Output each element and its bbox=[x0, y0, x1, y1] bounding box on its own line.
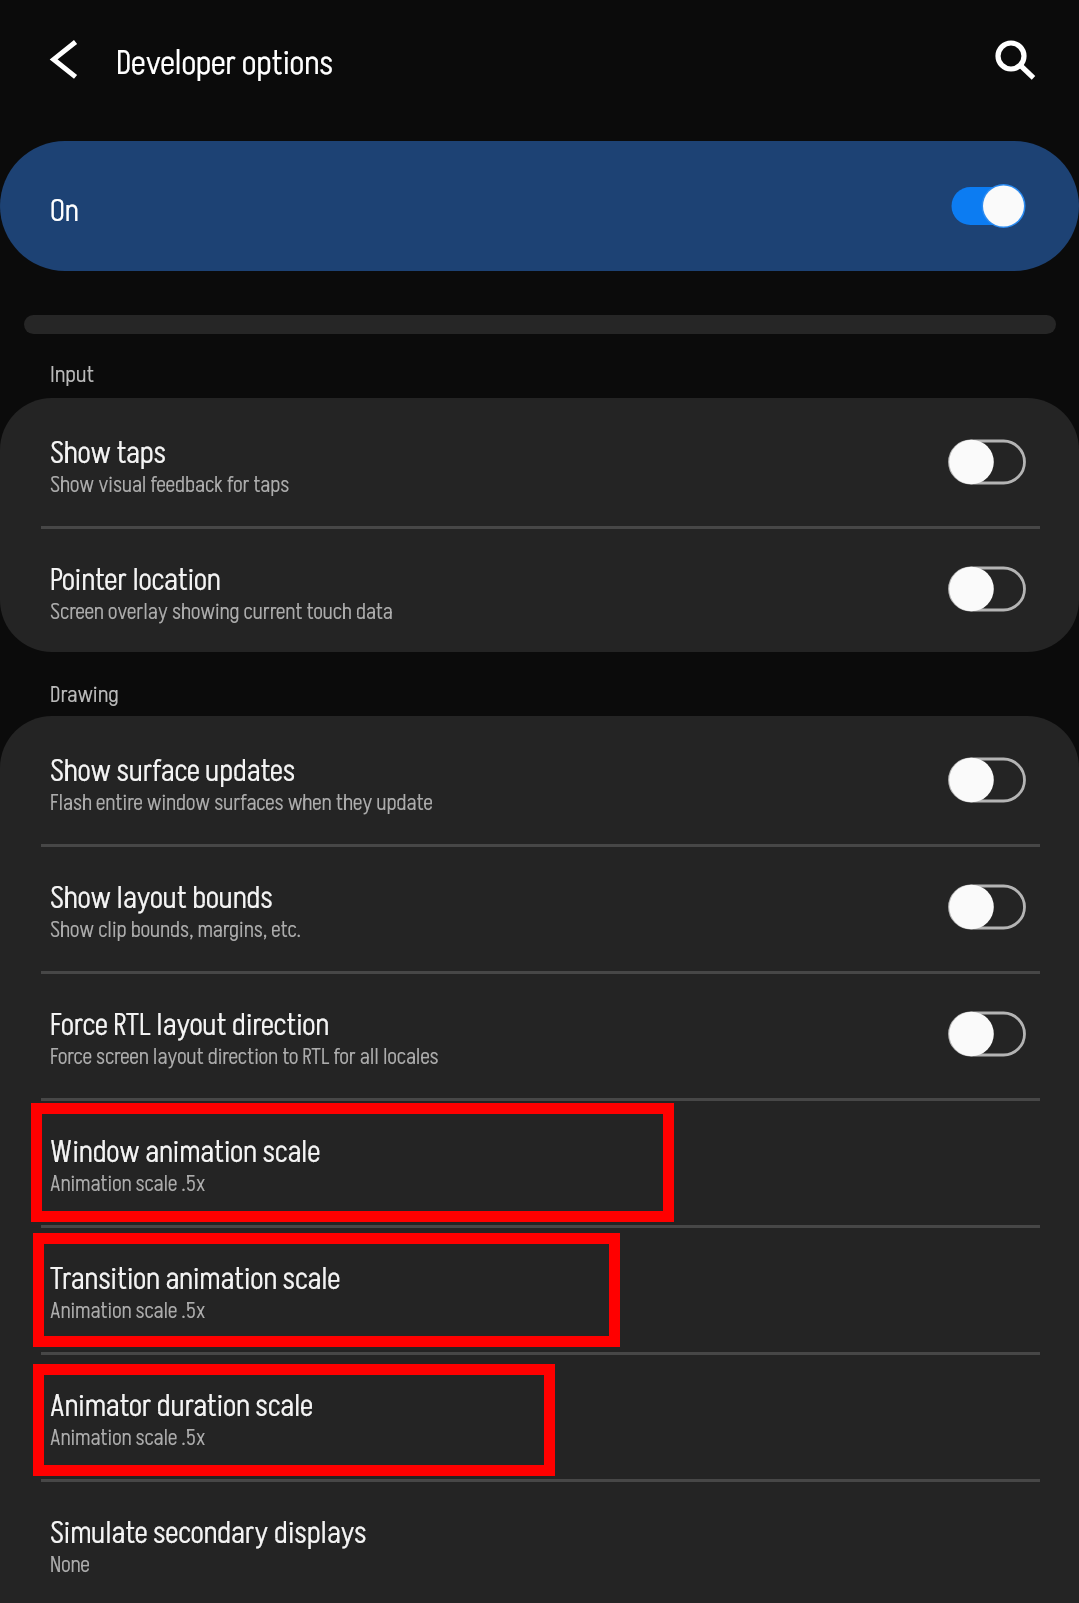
staticText: Animator duration scale bbox=[50, 1385, 314, 1428]
staticText: Show clip bounds, margins, etc. bbox=[50, 915, 301, 946]
staticText: Screen overlay showing current touch dat… bbox=[50, 597, 393, 628]
button[interactable]: Show layout bounds bbox=[0, 843, 1079, 970]
staticText: Force screen layout direction to RTL for… bbox=[50, 1042, 439, 1073]
staticText: Animation scale .5x bbox=[50, 1169, 206, 1200]
staticText: Simulate secondary displays bbox=[50, 1512, 367, 1555]
staticText: Developer options bbox=[116, 40, 334, 87]
staticText: None bbox=[50, 1550, 90, 1581]
button[interactable]: Show taps bbox=[0, 398, 1079, 525]
button[interactable]: Navigate up bbox=[34, 31, 94, 91]
staticText: Show taps bbox=[50, 432, 166, 475]
button[interactable]: Window animation scale bbox=[0, 1097, 1079, 1224]
staticText: Pointer location bbox=[50, 559, 221, 602]
button[interactable]: Pointer location bbox=[0, 525, 1079, 652]
button[interactable]: Simulate secondary displays bbox=[0, 1478, 1079, 1603]
staticText: Input bbox=[50, 359, 95, 391]
staticText: Window animation scale bbox=[50, 1131, 321, 1174]
staticText: Force RTL layout direction bbox=[50, 1004, 330, 1047]
staticText: Show surface updates bbox=[50, 750, 296, 793]
button[interactable]: Force RTL layout direction bbox=[0, 970, 1079, 1097]
staticText: Animation scale .5x bbox=[50, 1296, 206, 1327]
staticText: Transition animation scale bbox=[50, 1258, 341, 1301]
button[interactable]: Transition animation scale bbox=[0, 1224, 1079, 1351]
button[interactable]: Show surface updates bbox=[0, 716, 1079, 843]
staticText: Show layout bounds bbox=[50, 877, 273, 920]
staticText: Animation scale .5x bbox=[50, 1423, 206, 1454]
button[interactable]: On bbox=[0, 141, 1079, 271]
staticText: Flash entire window surfaces when they u… bbox=[50, 788, 433, 819]
staticText: Show visual feedback for taps bbox=[50, 470, 290, 501]
button[interactable]: Search bbox=[981, 26, 1041, 86]
button[interactable]: Animator duration scale bbox=[0, 1351, 1079, 1478]
staticText: Drawing bbox=[50, 679, 119, 711]
staticText: On bbox=[50, 190, 79, 233]
